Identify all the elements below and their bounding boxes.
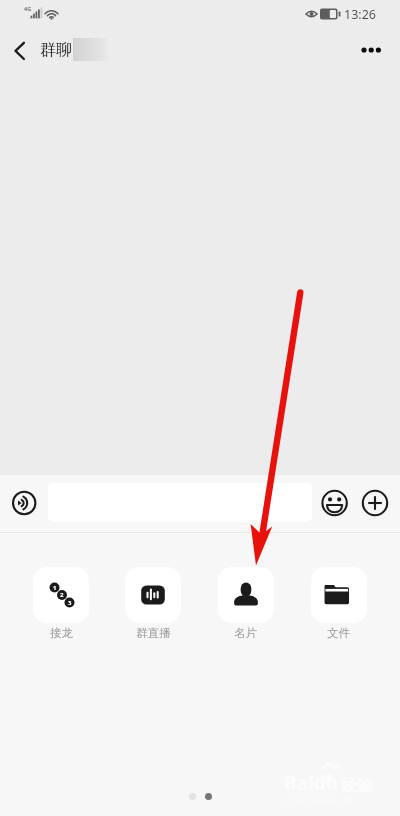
button[interactable]: 名片 — [199, 567, 292, 640]
staticText: 群聊 — [40, 40, 72, 60]
button[interactable]: Back — [0, 28, 40, 72]
staticText: 1 — [53, 584, 57, 592]
staticText: 名片 — [234, 626, 257, 640]
button[interactable]: Voice input — [0, 475, 48, 532]
staticText: 群直播 — [136, 626, 171, 640]
button[interactable]: Message input — [48, 483, 312, 522]
button[interactable]: 文件 — [292, 567, 385, 640]
staticText: 4G — [24, 5, 32, 12]
staticText: 13:26 — [344, 6, 376, 23]
staticText: 接龙 — [50, 626, 73, 640]
button[interactable]: Emoji — [312, 475, 356, 532]
staticText: 3 — [68, 599, 72, 607]
button[interactable]: More functions — [356, 475, 400, 532]
button[interactable]: 群直播 — [107, 567, 199, 640]
staticText: 2 — [60, 591, 64, 599]
button[interactable]: More options — [352, 28, 400, 72]
button[interactable]: 1 — [15, 567, 107, 640]
staticText: 文件 — [327, 626, 350, 640]
